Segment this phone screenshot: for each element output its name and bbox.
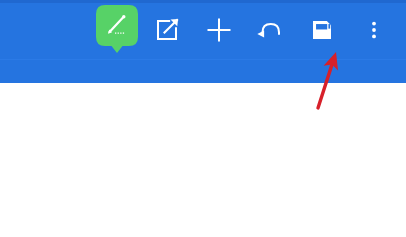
button[interactable]: Open in new xyxy=(147,10,187,50)
button[interactable]: Add xyxy=(199,10,239,50)
button[interactable]: Save xyxy=(302,10,342,50)
button[interactable]: Undo xyxy=(251,10,291,50)
button[interactable]: More options xyxy=(354,10,394,50)
button[interactable]: Edit xyxy=(96,5,138,53)
